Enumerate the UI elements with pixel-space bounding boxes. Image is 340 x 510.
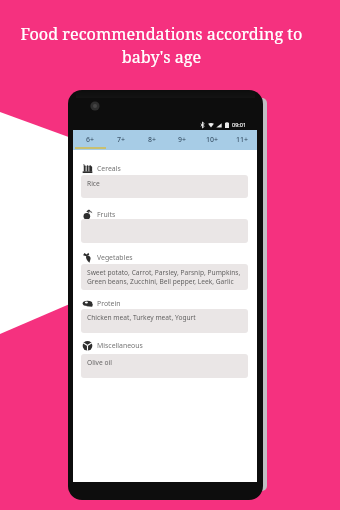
staticText: Protein xyxy=(97,299,121,308)
button[interactable]: 10+ xyxy=(197,130,227,150)
button[interactable]: 9+ xyxy=(167,130,197,150)
staticText: Miscellaneous xyxy=(97,341,143,350)
button[interactable]: 11+ xyxy=(227,130,257,150)
button[interactable]: 6+ xyxy=(75,130,106,150)
button[interactable]: 7+ xyxy=(106,130,137,150)
button[interactable]: Chicken meat, Turkey meat, Yogurt xyxy=(81,309,248,333)
staticText: 9+ xyxy=(178,135,187,145)
staticText: Cereals xyxy=(97,164,121,173)
staticText: 8+ xyxy=(148,135,157,145)
staticText: Food recommendations according to baby's… xyxy=(0,23,323,68)
staticText: 11+ xyxy=(236,135,249,145)
staticText: Chicken meat, Turkey meat, Yogurt xyxy=(87,313,196,322)
staticText: 6+ xyxy=(86,135,95,145)
button[interactable]: 8+ xyxy=(137,130,167,150)
button[interactable]: Olive oil xyxy=(81,354,248,378)
staticText: Fruits xyxy=(97,210,116,219)
button[interactable]: Rice xyxy=(81,175,248,198)
staticText: Olive oil xyxy=(87,358,112,367)
staticText: Vegetables xyxy=(97,253,133,262)
staticText: 09:01 xyxy=(232,121,247,128)
staticText: Rice xyxy=(87,179,100,188)
button[interactable]: Sweet potato, Carrot, Parsley, Parsnip, … xyxy=(81,264,248,290)
staticText: 10+ xyxy=(206,135,219,145)
staticText: 7+ xyxy=(117,135,126,145)
staticText: Sweet potato, Carrot, Parsley, Parsnip, … xyxy=(87,268,241,286)
